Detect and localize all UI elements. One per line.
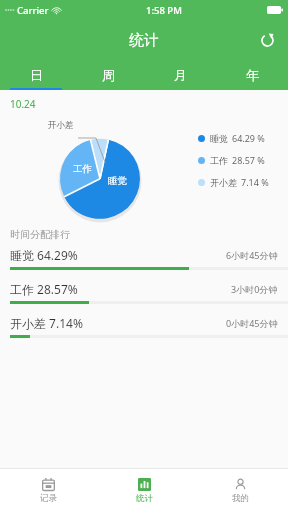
staticText: 工作 <box>73 163 92 175</box>
staticText: 月 <box>174 67 187 83</box>
staticText: 我的 <box>232 493 249 504</box>
staticText: 10.24 <box>10 97 36 111</box>
staticText: 睡觉 <box>210 133 228 144</box>
button[interactable]: 周 <box>72 60 144 90</box>
staticText: 工作 28.57% <box>10 281 78 297</box>
staticText: 开小差 <box>48 120 74 131</box>
staticText: 统计 <box>129 31 159 50</box>
staticText: 开小差 7.14% <box>10 315 83 331</box>
button[interactable]: 睡觉 64.29% <box>0 247 288 281</box>
staticText: 周 <box>102 67 115 83</box>
staticText: 0小时45分钟 <box>226 317 278 329</box>
staticText: 年 <box>246 67 259 83</box>
staticText: 统计 <box>136 493 153 504</box>
button[interactable]: 月 <box>144 60 216 90</box>
button[interactable]: 记录 <box>0 469 96 512</box>
button[interactable]: Refresh <box>254 27 280 53</box>
staticText: 时间分配排行 <box>10 228 70 241</box>
staticText: 64.29 % <box>232 132 265 144</box>
button[interactable]: 日 <box>0 60 72 90</box>
button[interactable]: 工作 28.57% <box>0 281 288 315</box>
staticText: 6小时45分钟 <box>226 249 278 261</box>
staticText: 工作 <box>210 155 228 166</box>
button[interactable]: 开小差 7.14% <box>0 315 288 349</box>
staticText: 28.57 % <box>232 154 265 166</box>
staticText: 记录 <box>40 493 57 504</box>
button[interactable]: 年 <box>216 60 288 90</box>
staticText: 1:58 PM <box>146 4 182 17</box>
button[interactable]: 统计 <box>96 469 192 512</box>
staticText: 3小时0分钟 <box>231 283 278 295</box>
staticText: Carrier <box>17 4 49 17</box>
staticText: 日 <box>30 67 43 83</box>
staticText: 7.14 % <box>241 176 269 188</box>
button[interactable]: 我的 <box>192 469 288 512</box>
staticText: 睡觉 <box>108 175 127 187</box>
staticText: 睡觉 64.29% <box>10 247 78 263</box>
staticText: 开小差 <box>210 177 237 188</box>
